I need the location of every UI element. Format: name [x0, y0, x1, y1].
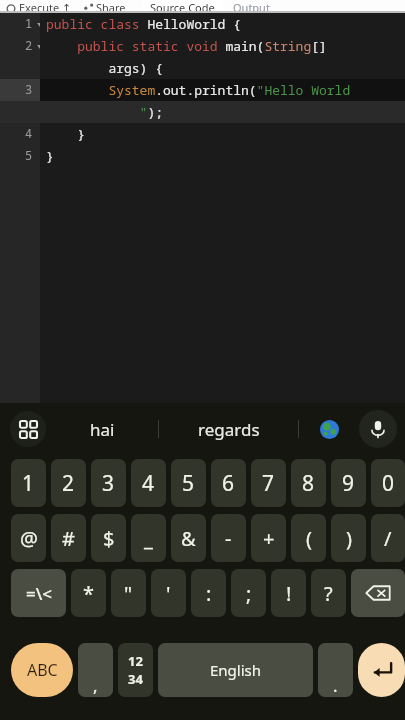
staticText: ;: [246, 580, 252, 607]
staticText: public static void main(String[]: [46, 37, 327, 55]
staticText: 3: [102, 469, 115, 498]
staticText: ": [124, 580, 133, 607]
staticText: &: [181, 525, 196, 552]
button[interactable]: #: [51, 514, 86, 562]
button[interactable]: _: [131, 514, 166, 562]
staticText: 1: [25, 15, 33, 31]
staticText: 6: [222, 469, 235, 498]
staticText: }: [46, 147, 54, 165]
staticText: 7: [262, 469, 275, 498]
button[interactable]: hai: [46, 403, 158, 455]
staticText: 4: [25, 125, 33, 141]
staticText: *: [83, 580, 95, 607]
staticText: System.out.println("Hello World: [46, 81, 351, 99]
staticText: 2: [25, 37, 33, 53]
button[interactable]: *: [71, 569, 106, 617]
staticText: 12: [128, 652, 143, 670]
button[interactable]: 6: [211, 459, 246, 507]
staticText: regards: [198, 418, 260, 441]
staticText: Source Code: [150, 0, 215, 11]
staticText: -: [225, 525, 232, 552]
staticText: ): [346, 525, 352, 552]
button[interactable]: Enter: [358, 643, 405, 697]
button[interactable]: ?: [311, 569, 346, 617]
button[interactable]: /: [371, 514, 405, 562]
button[interactable]: English: [158, 643, 313, 697]
staticText: Execute ↑: [19, 0, 72, 11]
staticText: @: [20, 525, 38, 552]
button[interactable]: @: [11, 514, 46, 562]
staticText: _: [144, 525, 153, 552]
staticText: ABC: [27, 659, 58, 681]
button[interactable]: 1: [11, 459, 46, 507]
staticText: /: [384, 525, 392, 552]
staticText: .: [333, 674, 338, 697]
staticText: 9: [342, 469, 355, 498]
button[interactable]: !: [271, 569, 306, 617]
staticText: 5: [25, 147, 33, 163]
button[interactable]: ;: [231, 569, 266, 617]
staticText: English: [210, 660, 262, 680]
button[interactable]: Source Code: [150, 0, 215, 11]
button[interactable]: (: [291, 514, 326, 562]
staticText: ");: [46, 103, 164, 121]
staticText: $: [103, 525, 115, 552]
button[interactable]: 4: [131, 459, 166, 507]
button[interactable]: Share: [84, 0, 126, 11]
button[interactable]: =\<: [11, 569, 66, 617]
button[interactable]: ABC: [11, 643, 73, 697]
staticText: 4: [142, 469, 155, 498]
button[interactable]: $: [91, 514, 126, 562]
staticText: Output: [233, 0, 270, 11]
staticText: 8: [302, 469, 315, 498]
staticText: args) {: [46, 59, 164, 77]
button[interactable]: Output: [233, 0, 270, 11]
button[interactable]: +: [251, 514, 286, 562]
staticText: 1: [22, 469, 35, 498]
button[interactable]: ': [151, 569, 186, 617]
button[interactable]: :: [191, 569, 226, 617]
button[interactable]: ": [111, 569, 146, 617]
button[interactable]: Execute ↑: [6, 0, 72, 11]
button[interactable]: -: [211, 514, 246, 562]
button[interactable]: 8: [291, 459, 326, 507]
button[interactable]: regards: [159, 403, 298, 455]
button[interactable]: ,: [78, 643, 113, 697]
staticText: ?: [324, 580, 333, 607]
staticText: 5: [182, 469, 195, 498]
staticText: ': [166, 580, 171, 607]
staticText: 3: [25, 81, 33, 97]
button[interactable]: Clipboard: [10, 411, 46, 447]
button[interactable]: 3: [91, 459, 126, 507]
button[interactable]: &: [171, 514, 206, 562]
staticText: =\<: [26, 582, 52, 605]
button[interactable]: Emoji: [299, 403, 359, 455]
staticText: +: [263, 525, 275, 552]
staticText: #: [62, 525, 75, 552]
button[interactable]: Voice input: [359, 410, 397, 448]
staticText: public class HelloWorld {: [46, 15, 242, 33]
button[interactable]: ): [331, 514, 366, 562]
staticText: 0: [382, 469, 395, 498]
staticText: (: [306, 525, 312, 552]
button[interactable]: Numbers: [118, 643, 153, 697]
button[interactable]: 5: [171, 459, 206, 507]
staticText: !: [286, 580, 292, 607]
staticText: 2: [62, 469, 75, 498]
button[interactable]: 9: [331, 459, 366, 507]
button[interactable]: 0: [371, 459, 405, 507]
staticText: :: [206, 580, 212, 607]
staticText: hai: [90, 418, 115, 441]
button[interactable]: 7: [251, 459, 286, 507]
staticText: }: [46, 125, 86, 143]
staticText: ,: [93, 674, 98, 697]
staticText: Share: [96, 0, 126, 11]
button[interactable]: .: [318, 643, 353, 697]
button[interactable]: Backspace: [351, 569, 405, 617]
staticText: 34: [128, 670, 143, 688]
button[interactable]: 2: [51, 459, 86, 507]
